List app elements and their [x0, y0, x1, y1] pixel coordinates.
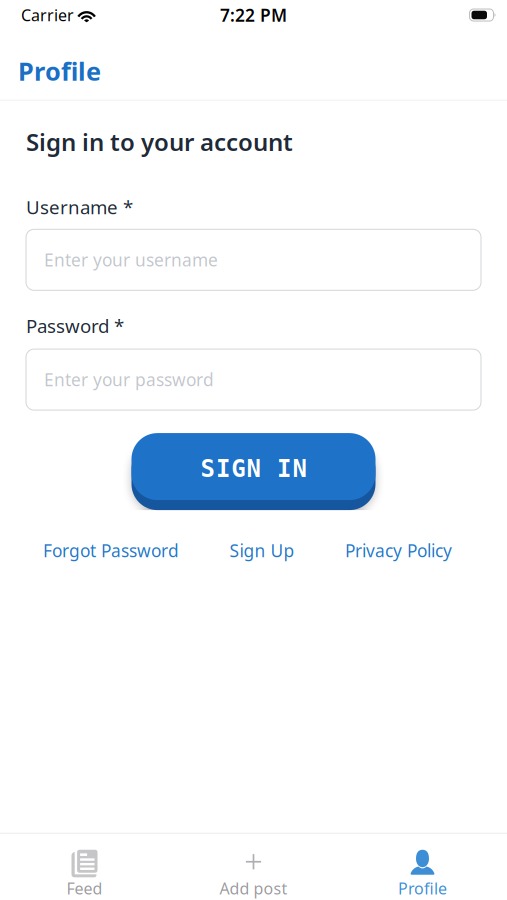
button[interactable]: Sign Up [229, 539, 294, 562]
staticText: Enter your username [44, 248, 218, 271]
staticText: Password * [26, 313, 124, 338]
staticText: Add post [219, 878, 287, 899]
staticText: 7:22 PM [220, 3, 287, 26]
button[interactable]: Add post [169, 850, 338, 899]
staticText: Feed [66, 878, 102, 899]
button[interactable]: Feed [0, 850, 169, 899]
button[interactable]: SIGN IN [131, 428, 375, 505]
staticText: Enter your password [44, 368, 214, 391]
staticText: Sign Up [229, 539, 294, 562]
staticText: Privacy Policy [345, 539, 452, 562]
staticText: Username * [26, 194, 133, 219]
button[interactable]: Privacy Policy [345, 539, 452, 562]
button[interactable]: Forgot Password [43, 539, 179, 562]
staticText: Profile [398, 878, 447, 899]
button[interactable]: Profile [338, 850, 507, 899]
staticText: Carrier [21, 4, 74, 26]
staticText: Forgot Password [43, 539, 179, 562]
staticText: Sign in to your account [26, 126, 293, 157]
staticText: SIGN IN [201, 455, 306, 482]
staticText: Profile [18, 54, 101, 88]
